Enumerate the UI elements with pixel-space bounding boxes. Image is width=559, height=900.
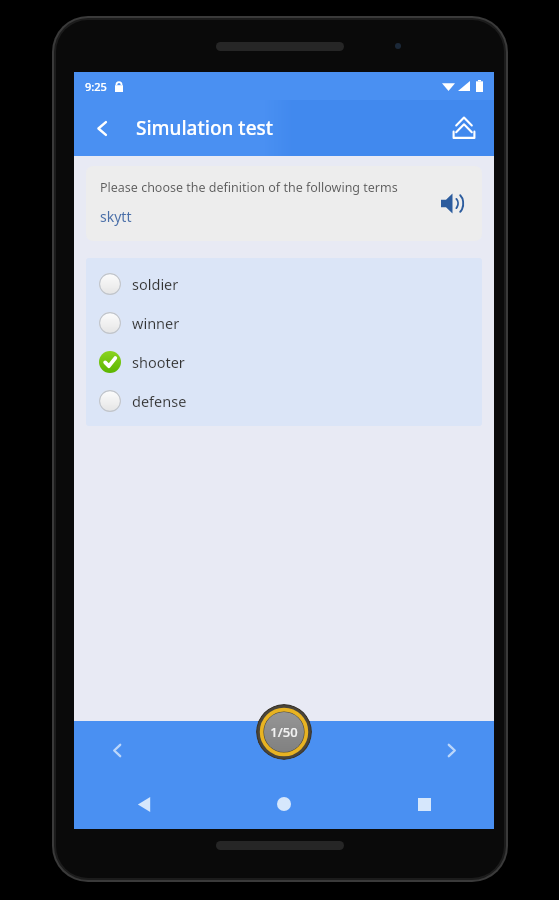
button[interactable]: Previous question (94, 727, 140, 773)
button[interactable]: Back (80, 106, 124, 150)
staticText: Simulation test (136, 115, 274, 141)
staticText: Please choose the definition of the foll… (100, 179, 398, 196)
button[interactable]: soldier (86, 264, 482, 303)
button[interactable]: Next question (428, 727, 474, 773)
staticText: winner (132, 313, 180, 333)
button[interactable]: Recent apps (402, 782, 446, 826)
button[interactable]: Question 1 of 50 (256, 704, 312, 760)
button[interactable]: Back (122, 782, 166, 826)
button[interactable]: Home (262, 782, 306, 826)
staticText: 9:25 (85, 79, 107, 94)
staticText: soldier (132, 274, 179, 294)
button[interactable]: shooter (86, 342, 482, 381)
button[interactable]: Please choose the definition of the foll… (86, 166, 482, 241)
button[interactable]: Play pronunciation (430, 181, 474, 225)
button[interactable]: Export (442, 106, 486, 150)
staticText: defense (132, 391, 187, 411)
staticText: 1/50 (270, 723, 298, 741)
button[interactable]: defense (86, 381, 482, 420)
staticText: skytt (100, 207, 132, 226)
staticText: shooter (132, 352, 185, 372)
button[interactable]: winner (86, 303, 482, 342)
